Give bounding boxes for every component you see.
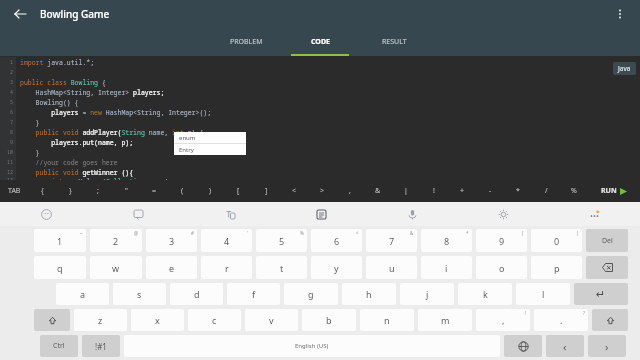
button[interactable]: f — [227, 283, 280, 305]
button[interactable]: o — [476, 256, 527, 279]
staticText: . — [560, 314, 563, 326]
button[interactable]: Translate — [184, 202, 276, 226]
button[interactable]: [ — [224, 180, 252, 202]
button[interactable]: e — [146, 256, 197, 279]
button[interactable]: r — [201, 256, 252, 279]
button[interactable]: More options — [610, 4, 630, 24]
staticText: Bowling() { — [20, 98, 79, 107]
button[interactable]: Emoji — [0, 202, 92, 226]
button[interactable]: Ctrl — [40, 335, 78, 357]
staticText: r — [225, 262, 229, 274]
button[interactable]: g — [284, 283, 338, 305]
button[interactable]: } — [56, 180, 84, 202]
button[interactable]: + — [448, 180, 476, 202]
button[interactable]: d — [170, 283, 223, 305]
button[interactable]: | — [392, 180, 420, 202]
button[interactable]: RUN — [588, 180, 640, 202]
button[interactable]: < — [280, 180, 308, 202]
staticText: enum — [179, 134, 196, 142]
button[interactable]: n — [360, 309, 414, 331]
button[interactable]: b — [302, 309, 356, 331]
button[interactable]: t — [256, 256, 307, 279]
button[interactable]: Voice input — [367, 202, 458, 226]
button[interactable]: w — [90, 256, 142, 279]
button[interactable]: > — [308, 180, 336, 202]
button[interactable]: 7 — [366, 229, 417, 252]
button[interactable]: 9 — [476, 229, 527, 252]
button[interactable]: Shift — [592, 309, 628, 331]
button[interactable]: u — [366, 256, 417, 279]
button[interactable]: 8 — [421, 229, 472, 252]
button[interactable]: 4 — [201, 229, 252, 252]
button[interactable]: 3 — [146, 229, 197, 252]
button[interactable]: " — [112, 180, 140, 202]
button[interactable]: ) — [196, 180, 224, 202]
button[interactable]: Shift — [34, 309, 70, 331]
button[interactable]: More — [549, 202, 640, 226]
button[interactable]: h — [342, 283, 396, 305]
button[interactable]: * — [504, 180, 532, 202]
button[interactable]: ! — [420, 180, 448, 202]
button[interactable]: v — [245, 309, 298, 331]
button[interactable]: English (US) — [124, 335, 500, 357]
button[interactable]: a — [56, 283, 109, 305]
button[interactable]: Settings — [458, 202, 549, 226]
button[interactable]: & — [364, 180, 392, 202]
staticText: 4 — [224, 235, 230, 247]
button[interactable]: ] — [252, 180, 280, 202]
staticText: public void getWinner (){ — [20, 168, 134, 177]
button[interactable]: = — [140, 180, 168, 202]
button[interactable]: { — [28, 180, 56, 202]
button[interactable]: 6 — [311, 229, 362, 252]
button[interactable]: Back — [10, 4, 30, 24]
button[interactable]: c — [188, 309, 241, 331]
button[interactable]: Change language — [504, 335, 542, 357]
button[interactable]: CODE — [283, 28, 357, 56]
button[interactable]: % — [560, 180, 588, 202]
button[interactable]: enum — [174, 132, 246, 143]
button[interactable]: RESULT — [357, 28, 431, 56]
button[interactable]: i — [421, 256, 472, 279]
staticText: n — [384, 314, 390, 326]
staticText: ~ — [80, 230, 83, 236]
button[interactable]: 0 — [531, 229, 582, 252]
button[interactable]: , — [476, 309, 530, 331]
button[interactable]: , — [336, 180, 364, 202]
button[interactable]: Del — [586, 229, 628, 252]
button[interactable]: m — [418, 309, 472, 331]
button[interactable]: ; — [84, 180, 112, 202]
button[interactable]: / — [532, 180, 560, 202]
button[interactable]: › — [588, 335, 626, 357]
button[interactable]: Java — [618, 64, 631, 73]
button[interactable]: j — [400, 283, 454, 305]
staticText: public void addPlayer(String name, int p… — [20, 128, 204, 137]
staticText: - — [489, 186, 492, 196]
button[interactable]: - — [476, 180, 504, 202]
button[interactable]: ( — [168, 180, 196, 202]
button[interactable]: TAB — [0, 180, 28, 202]
button[interactable]: Entry — [174, 144, 246, 155]
button[interactable]: !#1 — [82, 335, 120, 357]
button[interactable]: s — [113, 283, 166, 305]
staticText: b — [326, 314, 332, 326]
button[interactable]: . — [534, 309, 588, 331]
button[interactable]: ‹ — [546, 335, 584, 357]
button[interactable]: Sticker — [92, 202, 184, 226]
button[interactable]: z — [74, 309, 127, 331]
button[interactable]: Enter — [574, 283, 628, 305]
button[interactable]: Clipboard — [276, 202, 367, 226]
button[interactable]: 1 — [34, 229, 86, 252]
button[interactable]: k — [458, 283, 512, 305]
staticText: z — [98, 314, 103, 326]
button[interactable]: y — [311, 256, 362, 279]
button[interactable]: PROBLEM — [209, 28, 283, 56]
staticText: # — [191, 230, 194, 236]
button[interactable]: x — [131, 309, 184, 331]
button[interactable]: Backspace — [586, 256, 628, 279]
button[interactable]: l — [516, 283, 570, 305]
button[interactable]: 5 — [256, 229, 307, 252]
staticText: % — [571, 186, 577, 196]
button[interactable]: p — [531, 256, 582, 279]
button[interactable]: q — [34, 256, 86, 279]
button[interactable]: 2 — [90, 229, 142, 252]
